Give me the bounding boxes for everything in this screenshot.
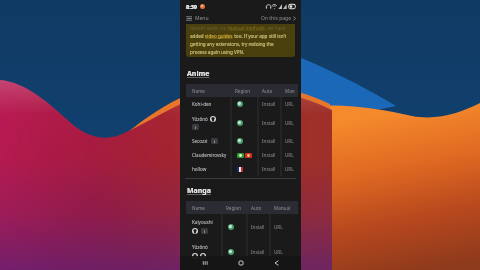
staticText: Region bbox=[235, 88, 258, 94]
button[interactable]: Yûzônó bbox=[180, 111, 301, 134]
staticText: URL bbox=[285, 120, 298, 126]
staticText: URL bbox=[285, 101, 298, 107]
staticText: Install bbox=[262, 166, 281, 172]
staticText: URL bbox=[285, 138, 298, 144]
staticText: Auto bbox=[251, 205, 270, 211]
staticText: Region bbox=[226, 205, 247, 211]
staticText: Install bbox=[262, 120, 281, 126]
staticText: doesn't work, try bbox=[190, 25, 228, 31]
button[interactable]: Menu bbox=[180, 13, 213, 24]
staticText: Man bbox=[285, 88, 298, 94]
staticText: Install bbox=[262, 138, 281, 144]
button[interactable]: Kaiyoushi bbox=[180, 214, 301, 239]
button[interactable]: hollow bbox=[180, 162, 301, 176]
staticText: i bbox=[195, 125, 197, 130]
staticText: Auto bbox=[262, 88, 281, 94]
staticText: manual methods bbox=[228, 25, 265, 31]
staticText: too. If your app still isn't bbox=[233, 33, 287, 39]
staticText: Name bbox=[192, 88, 231, 94]
staticText: hollow bbox=[192, 166, 207, 172]
staticText: video guides bbox=[205, 33, 233, 39]
staticText: Yûzônó bbox=[192, 244, 208, 250]
staticText: Install bbox=[262, 152, 281, 158]
staticText: Yûzônó bbox=[192, 116, 208, 122]
staticText: getting any extensions, try redoing the bbox=[190, 41, 274, 47]
button[interactable]: Recents bbox=[195, 256, 215, 270]
staticText: Install bbox=[262, 101, 281, 107]
staticText: Name bbox=[192, 205, 222, 211]
button[interactable]: Kohi-den bbox=[180, 97, 301, 111]
button[interactable]: Secozzi bbox=[180, 134, 301, 148]
staticText: Install bbox=[251, 249, 270, 255]
button[interactable]: On this page bbox=[256, 13, 301, 24]
staticText: URL bbox=[274, 249, 298, 255]
staticText: Kohi-den bbox=[192, 101, 212, 107]
staticText: Menu bbox=[195, 15, 209, 22]
button[interactable]: Claudemirovsky bbox=[180, 148, 301, 162]
staticText: Claudemirovsky bbox=[192, 152, 227, 158]
staticText: added bbox=[190, 33, 205, 39]
staticText: URL bbox=[285, 152, 298, 158]
staticText: Anime bbox=[187, 69, 210, 79]
staticText: i bbox=[214, 139, 216, 144]
staticText: Manual bbox=[274, 205, 298, 211]
button[interactable]: Home bbox=[231, 256, 251, 270]
button[interactable]: Back bbox=[266, 256, 286, 270]
staticText: 8:39 bbox=[186, 3, 197, 10]
staticText: Secozzi bbox=[192, 138, 208, 144]
staticText: URL bbox=[274, 224, 298, 230]
button[interactable]: Yûzônó bbox=[180, 239, 301, 264]
staticText: process again using VPN. bbox=[190, 49, 245, 55]
staticText: On this page bbox=[261, 15, 291, 22]
staticText: i bbox=[204, 229, 206, 234]
staticText: Kaiyoushi bbox=[192, 219, 213, 225]
staticText: Install bbox=[251, 224, 270, 230]
staticText: URL bbox=[285, 166, 298, 172]
staticText: Manga bbox=[187, 186, 211, 196]
staticText: , we have bbox=[265, 25, 286, 31]
